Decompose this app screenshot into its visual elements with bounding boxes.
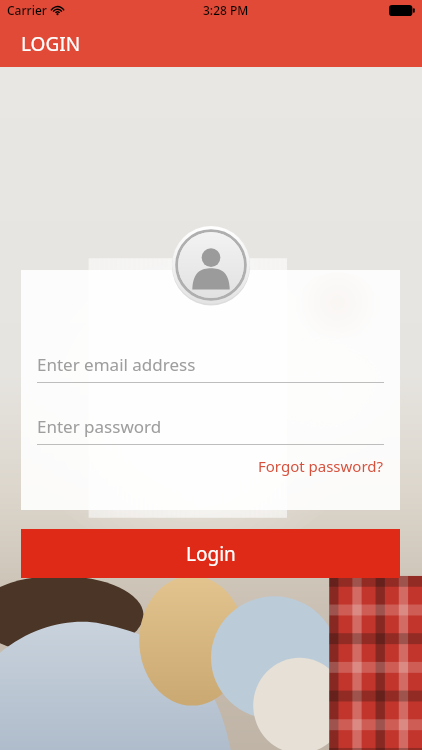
button[interactable]: Enter password [37,410,384,445]
button[interactable]: Login [21,529,400,578]
staticText: Enter email address [37,353,196,376]
button[interactable]: Enter email address [37,348,384,383]
staticText: Carrier [7,2,47,18]
staticText: Login [186,541,236,567]
staticText: Forgot password? [258,456,384,476]
staticText: Enter password [37,415,162,438]
staticText: 3:28 PM [203,2,249,18]
button[interactable]: Forgot password? [242,452,400,480]
button[interactable]: Profile photo [172,226,250,304]
staticText: LOGIN [21,31,81,57]
